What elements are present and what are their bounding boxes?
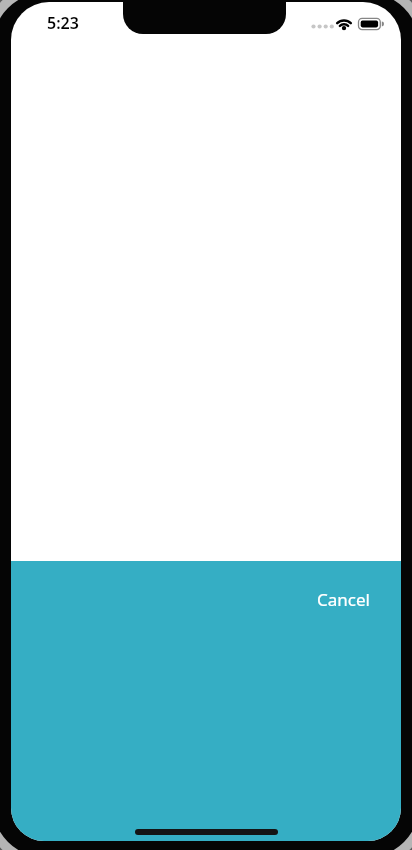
staticText: 5:23	[47, 12, 79, 34]
button[interactable]: Cancel	[288, 578, 398, 620]
staticText: Cancel	[317, 588, 370, 611]
